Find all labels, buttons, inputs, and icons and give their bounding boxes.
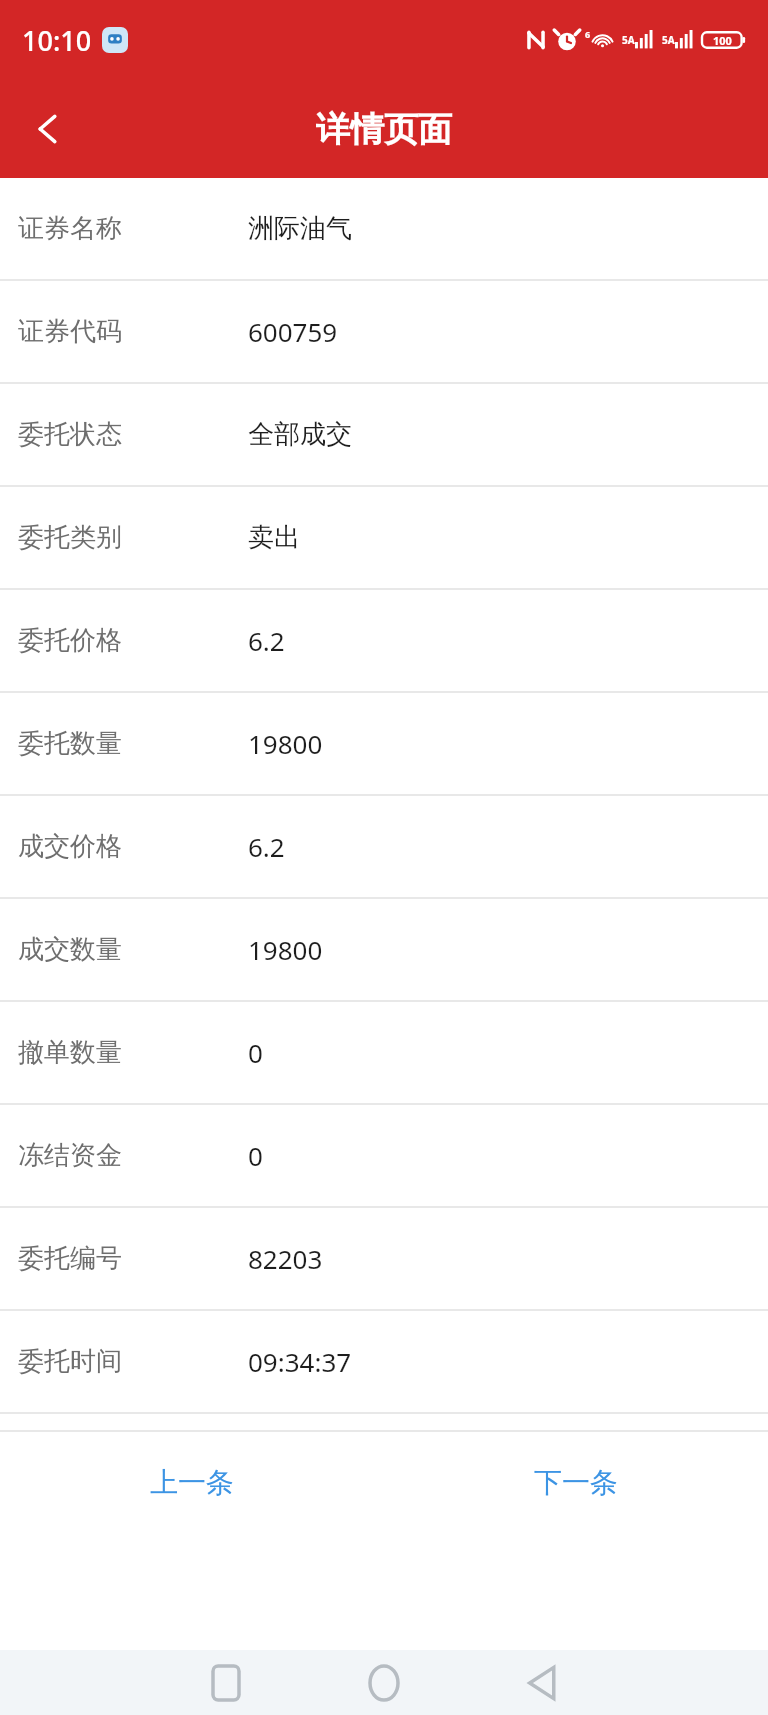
- staticText: 6.2: [248, 829, 285, 864]
- staticText: 成交数量: [18, 933, 248, 966]
- staticText: 19800: [248, 726, 323, 761]
- staticText: 证券代码: [18, 315, 248, 348]
- button[interactable]: 委托数量: [0, 693, 768, 796]
- staticText: 证券名称: [18, 212, 248, 245]
- staticText: 09:34:37: [248, 1344, 352, 1379]
- staticText: 19800: [248, 932, 323, 967]
- staticText: 委托价格: [18, 624, 248, 657]
- staticText: 6.2: [248, 623, 285, 658]
- button[interactable]: 委托编号: [0, 1208, 768, 1311]
- staticText: 5A: [662, 33, 675, 47]
- button[interactable]: 证券名称: [0, 178, 768, 281]
- staticText: 撤单数量: [18, 1036, 248, 1069]
- button[interactable]: 成交价格: [0, 796, 768, 899]
- button[interactable]: 委托时间: [0, 1311, 768, 1414]
- button[interactable]: Back: [0, 80, 96, 178]
- button[interactable]: 上一条: [0, 1432, 384, 1532]
- button[interactable]: Home: [324, 1650, 444, 1715]
- staticText: 委托状态: [18, 418, 248, 451]
- staticText: 100: [713, 33, 732, 48]
- staticText: 委托时间: [18, 1345, 248, 1378]
- button[interactable]: 证券代码: [0, 281, 768, 384]
- staticText: 洲际油气: [248, 212, 352, 245]
- staticText: 6: [585, 28, 591, 40]
- staticText: 委托数量: [18, 727, 248, 760]
- button[interactable]: Recent apps: [166, 1650, 286, 1715]
- button[interactable]: Back: [482, 1650, 602, 1715]
- button[interactable]: 成交数量: [0, 899, 768, 1002]
- staticText: 0: [248, 1035, 263, 1070]
- staticText: 10:10: [22, 22, 92, 59]
- staticText: 全部成交: [248, 418, 352, 451]
- staticText: 冻结资金: [18, 1139, 248, 1172]
- button[interactable]: 下一条: [384, 1432, 768, 1532]
- staticText: 0: [248, 1138, 263, 1173]
- staticText: 5A: [622, 33, 635, 47]
- staticText: 委托编号: [18, 1242, 248, 1275]
- staticText: 成交价格: [18, 830, 248, 863]
- button[interactable]: 撤单数量: [0, 1002, 768, 1105]
- staticText: 上一条: [150, 1465, 234, 1500]
- button[interactable]: 委托状态: [0, 384, 768, 487]
- staticText: 600759: [248, 314, 338, 349]
- button[interactable]: 委托价格: [0, 590, 768, 693]
- button[interactable]: 冻结资金: [0, 1105, 768, 1208]
- staticText: 卖出: [248, 521, 300, 554]
- staticText: 下一条: [534, 1465, 618, 1500]
- staticText: 详情页面: [316, 108, 452, 151]
- staticText: 委托类别: [18, 521, 248, 554]
- staticText: 82203: [248, 1241, 323, 1276]
- button[interactable]: 委托类别: [0, 487, 768, 590]
